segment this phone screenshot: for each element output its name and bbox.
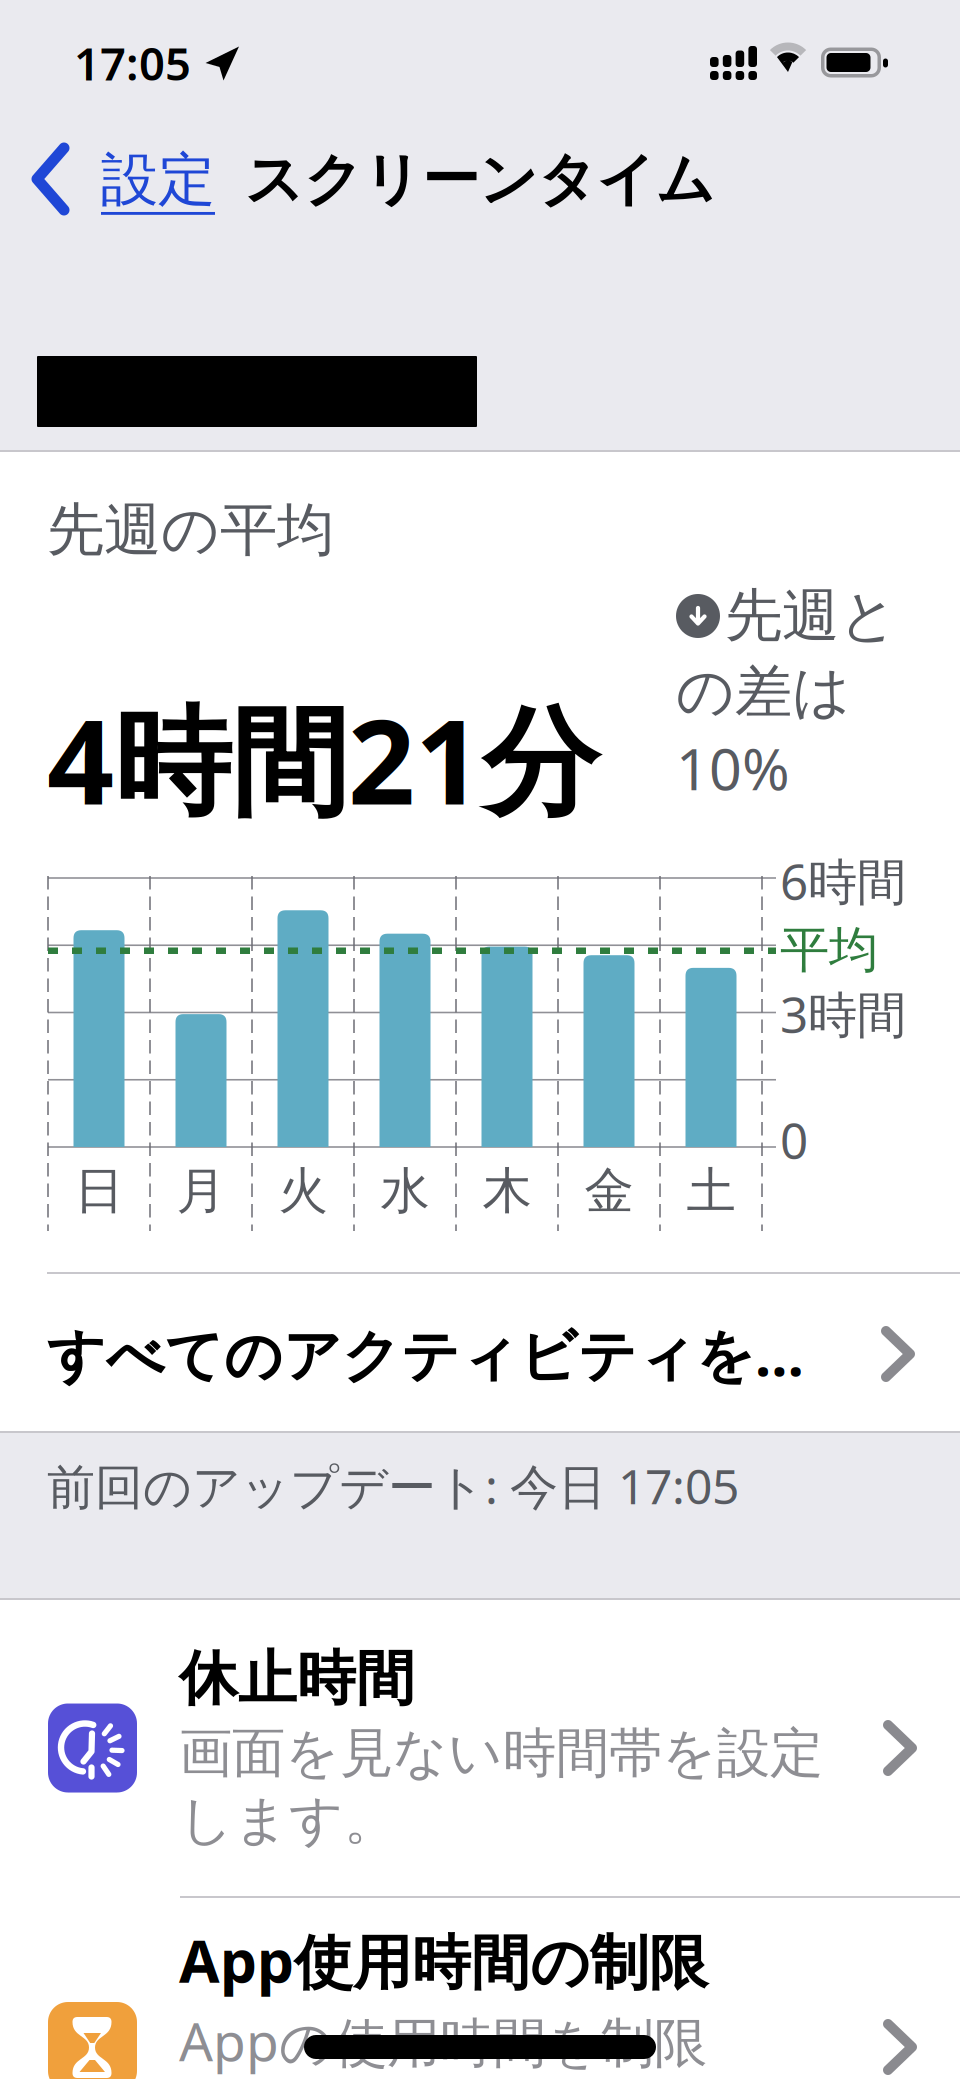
- staticText: 水: [380, 1160, 429, 1222]
- staticText: 月: [176, 1160, 225, 1222]
- staticText: 6時間: [780, 847, 906, 914]
- staticText: 土: [686, 1160, 735, 1222]
- staticText: 火: [278, 1160, 327, 1222]
- button[interactable]: 設定: [0, 144, 227, 216]
- staticText: 日: [74, 1160, 123, 1222]
- staticText: 0: [780, 1106, 808, 1173]
- staticText: 設定: [101, 144, 215, 216]
- staticText: スクリーンタイム: [245, 144, 715, 216]
- staticText: 10%: [676, 729, 790, 807]
- staticText: Appの使用時間を制限します。: [179, 2004, 707, 2079]
- staticText: 休止時間: [179, 1642, 415, 1716]
- staticText: 先週の平均: [47, 494, 334, 566]
- staticText: App使用時間の制限: [179, 1920, 708, 2000]
- staticText: 3時間: [780, 980, 906, 1047]
- staticText: 先週と: [725, 580, 898, 652]
- button[interactable]: すべてのアクティビティを…: [0, 1274, 960, 1434]
- staticText: すべてのアクティビティを…: [47, 1315, 804, 1393]
- staticText: 金: [584, 1160, 633, 1222]
- staticText: 前回のアップデート: 今日 17:05: [47, 1453, 739, 1518]
- staticText: 17:05: [74, 32, 191, 94]
- button[interactable]: App使用時間の制限: [0, 1898, 960, 2079]
- staticText: 木: [482, 1160, 531, 1222]
- staticText: 4時間21分: [47, 679, 599, 839]
- button[interactable]: 休止時間: [0, 1600, 960, 1896]
- staticText: 平均: [780, 919, 878, 981]
- staticText: の差は: [676, 656, 851, 728]
- staticText: 画面を見ない時間帯を設定します。: [179, 1720, 823, 1854]
